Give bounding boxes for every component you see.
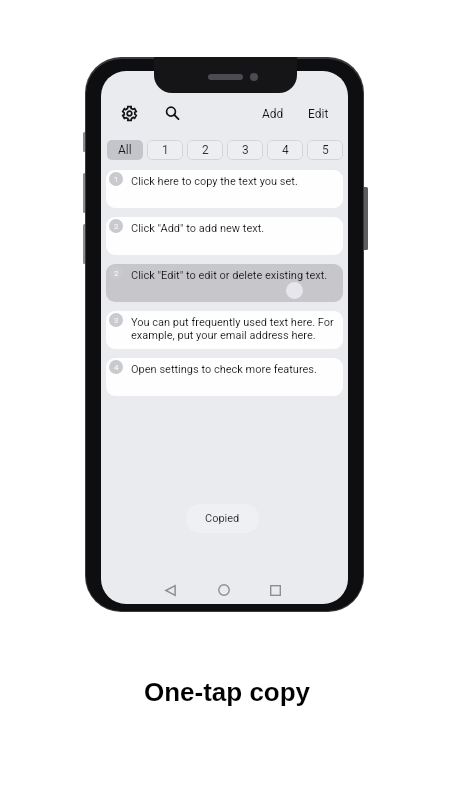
staticText: 3 [114, 316, 119, 325]
staticText: 5 [322, 143, 329, 157]
button[interactable]: 1 [106, 170, 343, 208]
button[interactable]: 4 [106, 358, 343, 396]
staticText: All [118, 143, 132, 157]
staticText: Click here to copy the text you set. [131, 175, 298, 188]
staticText: Click "Edit" to edit or delete existing … [131, 269, 328, 282]
staticText: 2 [114, 222, 119, 231]
button[interactable]: Home [211, 577, 237, 603]
staticText: You can put frequently used text here. F… [131, 316, 343, 342]
staticText: Click "Add" to add new text. [131, 222, 265, 235]
button[interactable]: Settings [121, 105, 137, 121]
button[interactable]: Recents [262, 577, 288, 603]
button[interactable]: Edit [304, 104, 333, 124]
staticText: 1 [114, 175, 119, 184]
button[interactable]: 2 [187, 140, 223, 160]
staticText: Add [262, 107, 284, 121]
staticText: 1 [162, 143, 169, 157]
staticText: 4 [114, 363, 119, 372]
button[interactable]: Search [164, 105, 180, 121]
staticText: One-tap copy [2, 677, 450, 706]
staticText: Copied [205, 512, 240, 525]
button[interactable]: Add [258, 104, 288, 124]
staticText: 3 [242, 143, 249, 157]
button[interactable]: Back [157, 577, 183, 603]
button[interactable]: 4 [267, 140, 303, 160]
button[interactable]: 2 [106, 217, 343, 255]
button[interactable]: 1 [147, 140, 183, 160]
staticText: 2 [202, 143, 209, 157]
staticText: Open settings to check more features. [131, 363, 317, 376]
staticText: 2 [114, 269, 119, 278]
button[interactable]: 3 [106, 311, 343, 349]
button[interactable]: 5 [307, 140, 343, 160]
button[interactable]: 2 [106, 264, 343, 302]
button[interactable]: All [107, 140, 143, 160]
button[interactable]: 3 [227, 140, 263, 160]
staticText: Edit [308, 107, 329, 121]
staticText: 4 [282, 143, 289, 157]
